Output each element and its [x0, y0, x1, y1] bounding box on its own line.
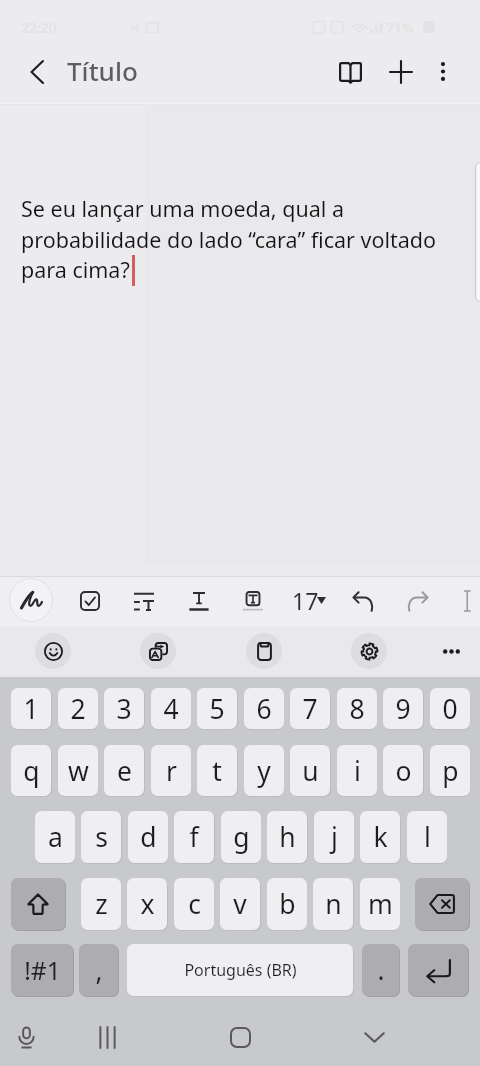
button[interactable]: Redo — [399, 582, 437, 620]
staticText: 6 — [256, 691, 272, 727]
button[interactable]: n — [313, 878, 353, 930]
button[interactable]: Título — [67, 52, 138, 88]
button[interactable]: Shift — [11, 878, 65, 930]
staticText: g — [233, 819, 250, 855]
staticText: x — [140, 886, 155, 922]
staticText: n — [325, 886, 342, 922]
button[interactable]: Recents — [85, 1015, 129, 1059]
button[interactable]: k — [360, 811, 400, 863]
button[interactable]: Voice input — [4, 1015, 48, 1059]
button[interactable]: !#1 — [11, 944, 73, 996]
button[interactable]: b — [267, 878, 307, 930]
button[interactable]: m — [360, 878, 400, 930]
button[interactable]: 0 — [430, 688, 470, 729]
button[interactable]: 6 — [244, 688, 284, 729]
staticText: r — [166, 753, 177, 789]
button[interactable]: p — [430, 745, 470, 796]
staticText: Português (BR) — [184, 959, 297, 981]
button[interactable]: Settings — [351, 633, 387, 669]
button[interactable]: Clipboard — [246, 633, 282, 669]
staticText: 9 — [395, 691, 411, 727]
button[interactable]: 3 — [104, 688, 144, 729]
button[interactable]: Undo — [344, 582, 382, 620]
button[interactable]: Paragraph style — [125, 582, 163, 620]
staticText: v — [233, 886, 247, 922]
button[interactable]: Home — [218, 1015, 262, 1059]
button[interactable]: Checklist — [71, 582, 109, 620]
button[interactable]: x — [127, 878, 167, 930]
button[interactable]: 7 — [290, 688, 330, 729]
staticText: e — [117, 753, 132, 789]
staticText: o — [395, 753, 412, 789]
button[interactable]: Back — [14, 49, 59, 94]
button[interactable]: u — [290, 745, 330, 796]
staticText: f — [189, 819, 199, 855]
staticText: z — [95, 886, 108, 922]
staticText: 4 — [163, 691, 179, 727]
button[interactable]: 9 — [383, 688, 423, 729]
button[interactable]: Reading mode — [328, 49, 373, 94]
button[interactable]: More — [433, 633, 469, 669]
staticText: h — [279, 819, 296, 855]
button[interactable]: h — [267, 811, 307, 863]
button[interactable]: 4 — [151, 688, 191, 729]
button[interactable]: d — [128, 811, 168, 863]
button[interactable]: Add — [378, 49, 423, 94]
button[interactable]: . — [362, 944, 399, 996]
staticText: l — [424, 819, 431, 855]
button[interactable]: Português (BR) — [127, 944, 353, 996]
button[interactable]: 1 — [11, 688, 51, 729]
staticText: 22:20 — [21, 18, 57, 37]
button[interactable]: y — [244, 745, 284, 796]
staticText: c — [188, 886, 201, 922]
staticText: 0 — [442, 691, 458, 727]
staticText: 7 — [302, 691, 318, 727]
button[interactable]: t — [197, 745, 237, 796]
button[interactable]: z — [81, 878, 121, 930]
staticText: s — [95, 819, 108, 855]
button[interactable]: j — [314, 811, 354, 863]
button[interactable]: f — [174, 811, 214, 863]
button[interactable]: Translate — [140, 633, 176, 669]
button[interactable]: w — [58, 745, 98, 796]
button[interactable]: Hide keyboard — [352, 1015, 396, 1059]
staticText: 5 — [209, 691, 225, 727]
button[interactable]: Enter — [408, 944, 468, 996]
button[interactable]: r — [151, 745, 191, 796]
button[interactable]: Backspace — [415, 878, 469, 930]
button[interactable]: o — [383, 745, 423, 796]
staticText: , — [95, 952, 103, 988]
button[interactable]: l — [407, 811, 447, 863]
staticText: d — [140, 819, 157, 855]
staticText: q — [23, 753, 40, 789]
staticText: 17 — [292, 585, 319, 616]
button[interactable]: c — [174, 878, 214, 930]
staticText: 2 — [70, 691, 86, 727]
button[interactable]: 2 — [58, 688, 98, 729]
button[interactable]: 5 — [197, 688, 237, 729]
button[interactable]: Text style — [180, 582, 218, 620]
staticText: w — [68, 753, 89, 789]
staticText: !#1 — [24, 954, 61, 987]
button[interactable]: i — [337, 745, 377, 796]
button[interactable]: s — [81, 811, 121, 863]
staticText: Se eu lançar uma moeda, qual a probabili… — [21, 194, 471, 284]
button[interactable]: , — [79, 944, 118, 996]
staticText: m — [368, 886, 393, 922]
button[interactable]: a — [35, 811, 75, 863]
button[interactable]: Handwriting — [9, 578, 53, 622]
staticText: j — [331, 819, 338, 855]
button[interactable]: 17 — [292, 580, 327, 620]
button[interactable]: More options — [420, 49, 465, 94]
button[interactable]: Text box — [234, 582, 272, 620]
staticText: t — [212, 753, 222, 789]
button[interactable]: v — [220, 878, 260, 930]
staticText: 3 — [116, 691, 132, 727]
staticText: 8 — [349, 691, 365, 727]
button[interactable]: q — [11, 745, 51, 796]
button[interactable]: Emoji — [35, 633, 71, 669]
staticText: . — [377, 952, 385, 988]
button[interactable]: e — [104, 745, 144, 796]
button[interactable]: 8 — [337, 688, 377, 729]
button[interactable]: g — [221, 811, 261, 863]
